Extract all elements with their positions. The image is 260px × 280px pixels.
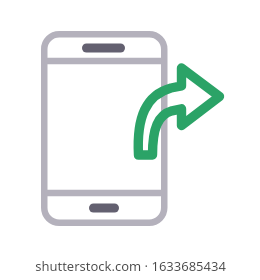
staticText: shutterstock.com · 1633685434 (35, 257, 226, 275)
